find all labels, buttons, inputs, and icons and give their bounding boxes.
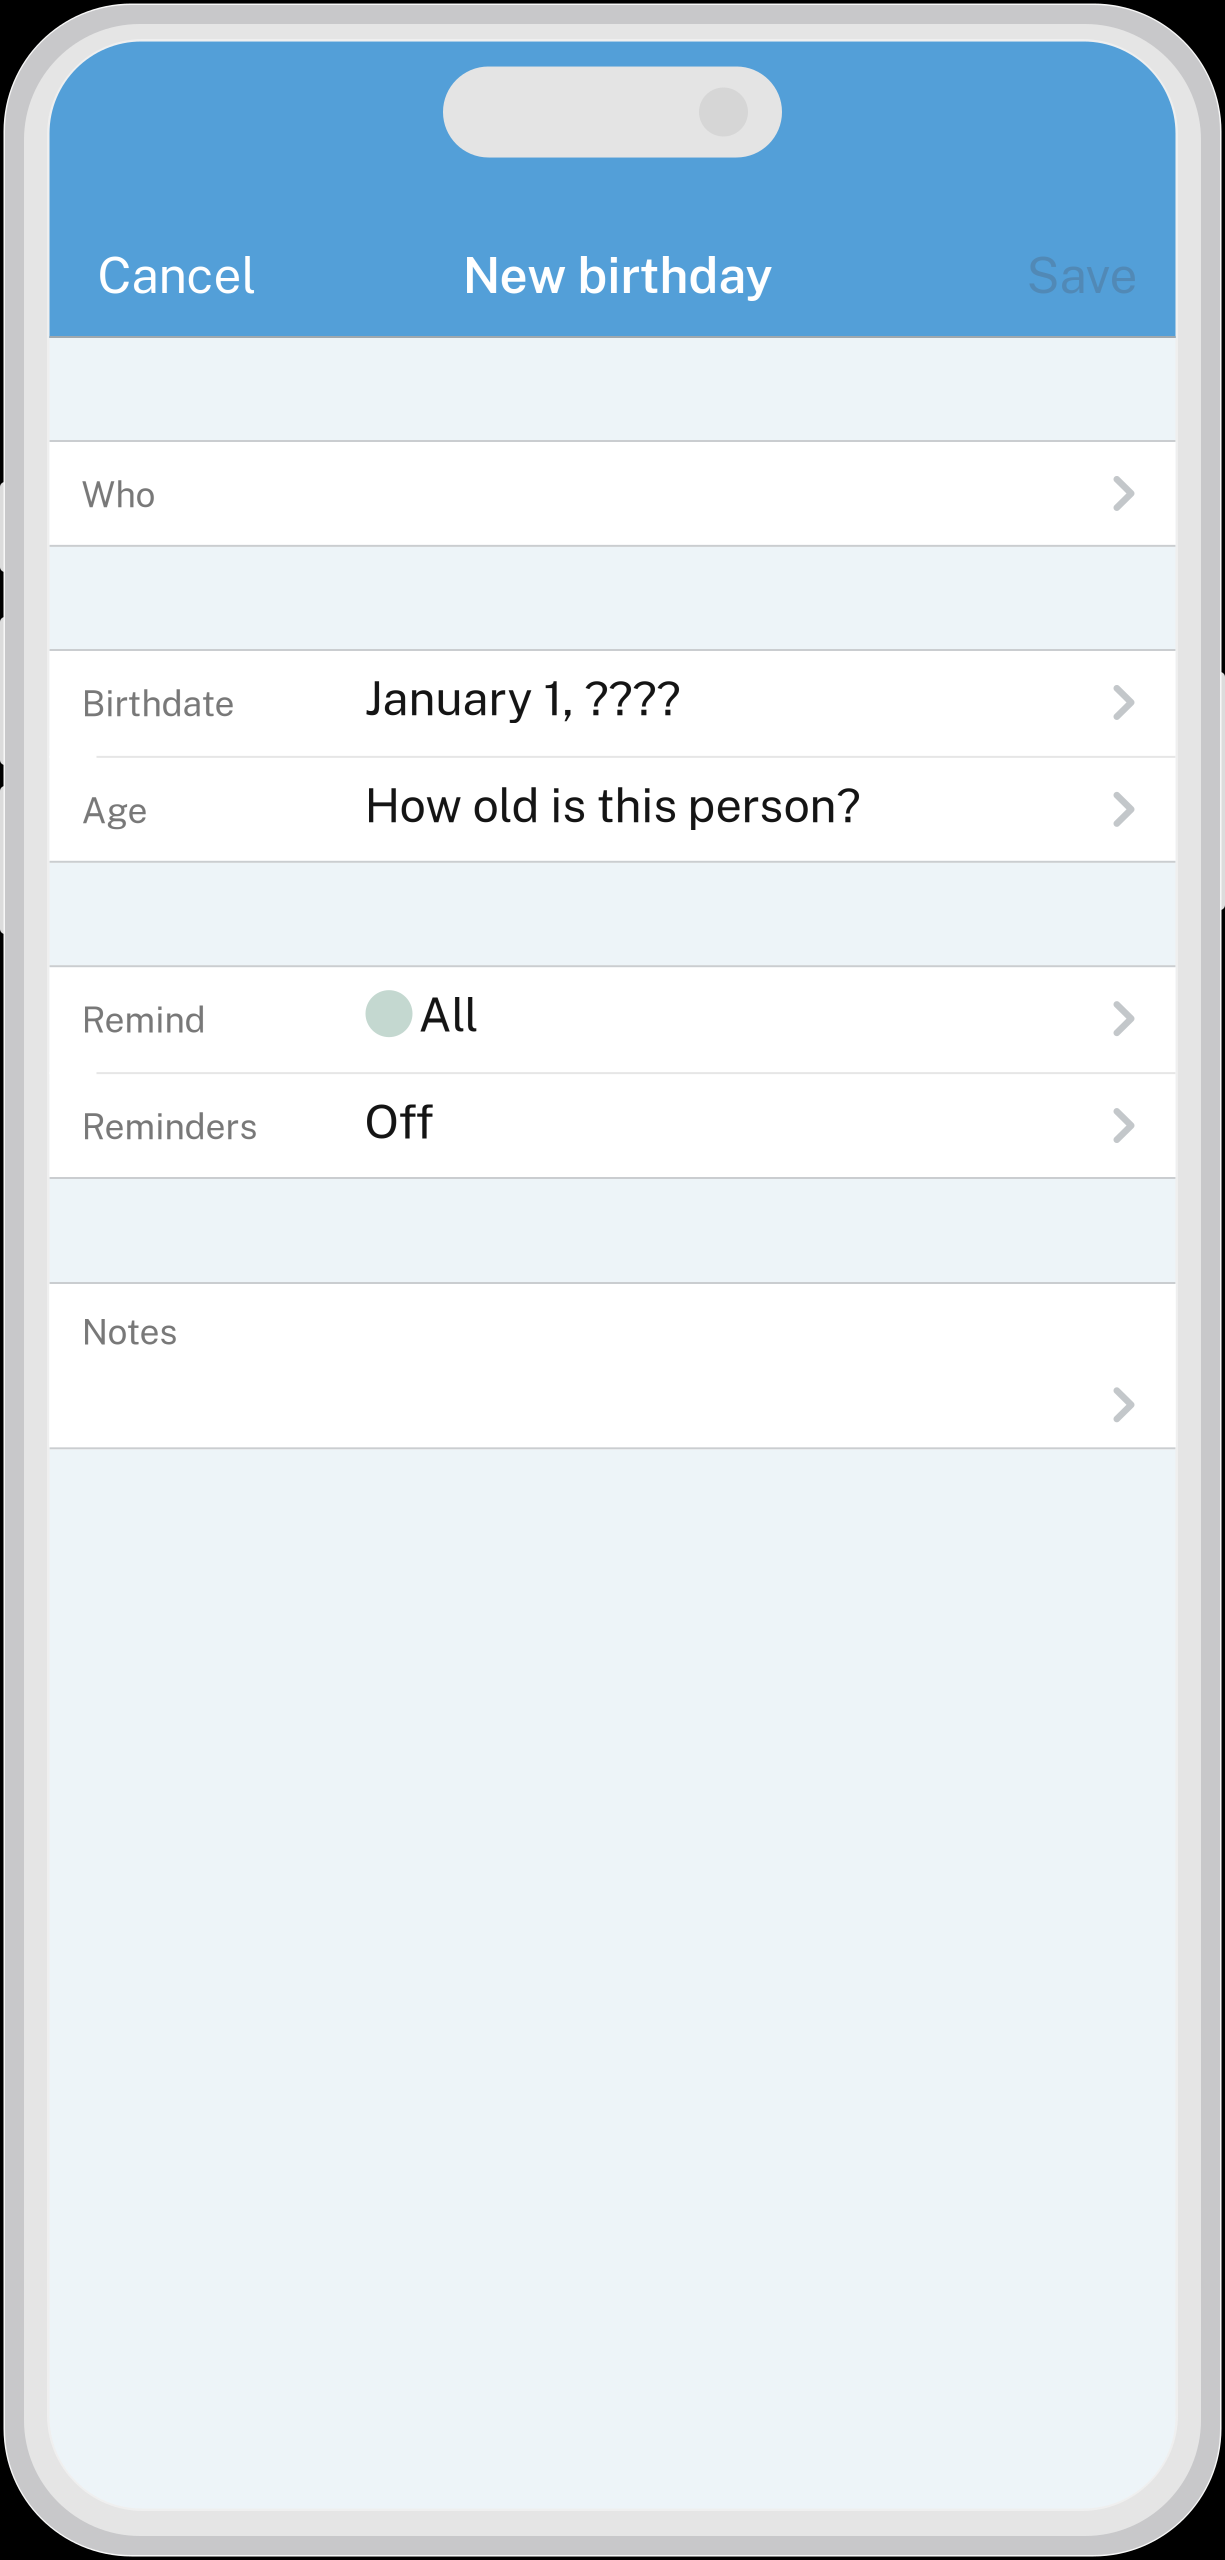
button[interactable]: Reminders <box>49 1072 1175 1179</box>
button[interactable]: Remind <box>49 965 1175 1072</box>
staticText: Reminders <box>81 1106 257 1147</box>
staticText: January 1, ???? <box>364 671 680 726</box>
staticText: Save <box>1026 246 1137 304</box>
staticText: Who <box>81 474 155 515</box>
button[interactable]: Cancel <box>49 230 276 320</box>
button[interactable]: Save <box>1006 230 1175 320</box>
staticText: Notes <box>81 1311 177 1352</box>
staticText: How old is this person? <box>364 778 860 833</box>
staticText: Cancel <box>97 246 256 304</box>
button[interactable]: Notes <box>49 1282 1175 1449</box>
staticText: All <box>418 987 478 1042</box>
staticText: Birthdate <box>81 683 234 724</box>
staticText: New birthday <box>462 246 772 304</box>
button[interactable]: Age <box>49 756 1175 863</box>
staticText: Off <box>364 1094 433 1149</box>
button[interactable]: Birthdate <box>49 649 1175 756</box>
button[interactable]: Who <box>49 440 1175 547</box>
staticText: Remind <box>81 999 205 1040</box>
staticText: Age <box>81 790 147 831</box>
